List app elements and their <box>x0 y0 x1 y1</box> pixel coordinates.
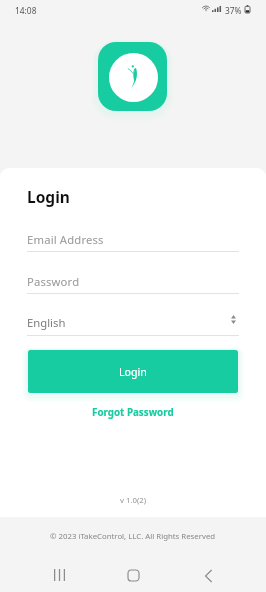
staticText: 14:08 <box>15 5 37 16</box>
staticText: v 1.0(2) <box>120 495 147 506</box>
button[interactable]: Back <box>186 558 230 592</box>
button[interactable]: English <box>27 315 239 337</box>
button[interactable]: Login <box>28 350 238 393</box>
button[interactable]: Forgot Password <box>27 403 239 421</box>
staticText: Forgot Password <box>92 406 174 419</box>
staticText: English <box>27 315 66 330</box>
staticText: Login <box>119 365 147 379</box>
staticText: Password <box>27 274 80 289</box>
button[interactable]: Password <box>27 274 239 289</box>
button[interactable]: Home <box>111 557 155 592</box>
staticText: 37% <box>225 5 242 16</box>
button[interactable]: Recent apps <box>37 557 81 592</box>
staticText: Login <box>27 186 70 207</box>
button[interactable]: Email Address <box>27 232 239 247</box>
staticText: © 2023 iTakeControl, LLC. All Rights Res… <box>50 531 216 542</box>
staticText: Email Address <box>27 232 104 247</box>
